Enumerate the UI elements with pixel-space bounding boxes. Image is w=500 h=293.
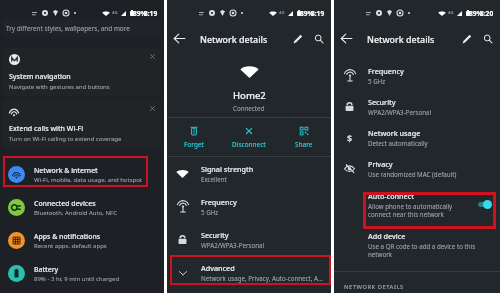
- button[interactable]: Signal strength: [167, 157, 331, 190]
- staticText: 5 GHz: [368, 77, 386, 85]
- staticText: Bluetooth, Android Auto, NFC: [34, 209, 117, 217]
- staticText: 4G: [112, 10, 118, 16]
- staticText: Battery: [34, 265, 59, 274]
- staticText: $: [347, 132, 353, 144]
- staticText: Use a QR code to add a device to this ne…: [368, 242, 476, 258]
- staticText: Extend calls with Wi-Fi: [9, 124, 84, 134]
- staticText: WPA2/WPA3-Personal: [368, 108, 432, 116]
- button[interactable]: Security: [167, 223, 331, 256]
- staticText: 89% - 3 hr, 9 min until charged: [34, 275, 120, 283]
- staticText: Connected: [233, 104, 265, 112]
- staticText: Share: [295, 140, 313, 149]
- button[interactable]: Forget: [167, 118, 221, 156]
- staticText: Forget: [184, 140, 204, 149]
- button[interactable]: Disconnect: [221, 118, 276, 156]
- staticText: Advanced: [201, 263, 235, 273]
- staticText: Frequency: [201, 197, 237, 207]
- button[interactable]: System navigation: [3, 48, 161, 96]
- staticText: 4G: [279, 10, 285, 16]
- button[interactable]: Connected devices: [0, 191, 164, 224]
- button[interactable]: Add device: [334, 224, 500, 264]
- staticText: Network & internet: [34, 166, 98, 175]
- button[interactable]: Frequency: [334, 60, 500, 91]
- staticText: Detect automatically: [368, 139, 428, 147]
- button[interactable]: Frequency: [167, 190, 331, 223]
- staticText: Network usage, Privacy, Auto-connect, Ad…: [201, 274, 323, 282]
- staticText: Allow phone to automatically connect nea…: [368, 202, 453, 218]
- button[interactable]: $: [334, 122, 500, 153]
- staticText: Auto-connect: [368, 191, 415, 201]
- button[interactable]: Dismiss: [149, 105, 156, 112]
- button[interactable]: Battery: [0, 257, 164, 290]
- button[interactable]: Dismiss: [149, 53, 156, 60]
- button[interactable]: Apps & notifications: [0, 224, 164, 257]
- staticText: Disconnect: [232, 140, 266, 149]
- staticText: Excellent: [201, 175, 227, 183]
- staticText: Turn on Wi-Fi calling to extend coverage: [9, 135, 122, 143]
- staticText: Security: [368, 97, 396, 107]
- button[interactable]: Search: [483, 34, 493, 44]
- staticText: 89%: [133, 9, 147, 18]
- staticText: Connected devices: [34, 199, 96, 208]
- button[interactable]: Edit: [293, 34, 303, 44]
- button[interactable]: Privacy: [334, 153, 500, 184]
- staticText: 8:19: [311, 9, 325, 18]
- button[interactable]: Edit: [462, 34, 472, 44]
- staticText: Navigate with gestures and buttons: [9, 83, 110, 91]
- staticText: System navigation: [9, 72, 71, 82]
- button[interactable]: Try different styles, wallpapers, and mo…: [3, 19, 161, 37]
- button[interactable]: Security: [334, 91, 500, 122]
- staticText: Apps & notifications: [34, 232, 101, 241]
- staticText: WPA2/WPA3-Personal: [201, 241, 265, 249]
- staticText: Network details: [200, 33, 268, 45]
- staticText: Frequency: [368, 66, 404, 76]
- staticText: Signal strength: [201, 164, 254, 174]
- button[interactable]: Search: [314, 34, 324, 44]
- staticText: Recent apps, default apps: [34, 242, 107, 250]
- button[interactable]: Advanced: [167, 256, 331, 289]
- staticText: 89%: [469, 9, 483, 18]
- staticText: 8:20: [480, 9, 494, 18]
- staticText: 89%: [300, 9, 314, 18]
- staticText: Security: [201, 230, 229, 240]
- staticText: Use randomized MAC (default): [368, 170, 457, 178]
- staticText: 8:19: [144, 9, 158, 18]
- staticText: Privacy: [368, 159, 393, 169]
- button[interactable]: Back: [173, 32, 186, 45]
- staticText: 5 GHz: [201, 208, 219, 216]
- staticText: Try different styles, wallpapers, and mo…: [6, 24, 130, 33]
- staticText: NETWORK DETAILS: [344, 283, 404, 291]
- staticText: Network usage: [368, 128, 421, 138]
- staticText: Home2: [233, 89, 266, 102]
- staticText: Add device: [368, 231, 406, 241]
- button[interactable]: Network & internet: [0, 158, 164, 191]
- button[interactable]: Auto-connect: [334, 184, 500, 224]
- staticText: Network details: [367, 33, 435, 45]
- button[interactable]: Extend calls with Wi-Fi: [3, 100, 161, 148]
- button[interactable]: Share: [276, 118, 331, 156]
- staticText: 4G: [448, 10, 454, 16]
- button[interactable]: Back: [340, 32, 353, 45]
- staticText: Wi-Fi, mobile, data usage, and hotspot: [34, 176, 142, 184]
